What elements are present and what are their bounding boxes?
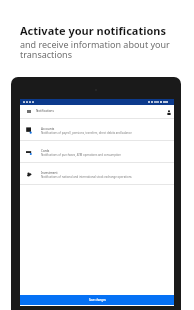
staticText: Notifications of payroll, pensions, tran… — [41, 131, 132, 135]
button[interactable]: Open navigation menu — [24, 107, 33, 116]
staticText: Cards — [41, 149, 50, 153]
staticText: Notifications — [36, 109, 54, 113]
staticText: Notifications of national and internatio… — [41, 175, 132, 179]
button[interactable]: Accounts — [20, 119, 174, 141]
staticText: Investment — [41, 171, 58, 175]
button[interactable]: Cards — [20, 141, 174, 163]
button[interactable]: Account profile — [164, 108, 173, 117]
staticText: and receive information about your trans… — [20, 38, 173, 60]
button[interactable]: Investment — [20, 163, 174, 185]
staticText: Notifications of purchases, ATM operatio… — [41, 153, 122, 157]
staticText: Accounts — [41, 127, 55, 131]
staticText: Activate your notifications — [20, 23, 167, 38]
button[interactable]: Save changes — [20, 295, 174, 305]
staticText: Save changes — [89, 298, 106, 302]
